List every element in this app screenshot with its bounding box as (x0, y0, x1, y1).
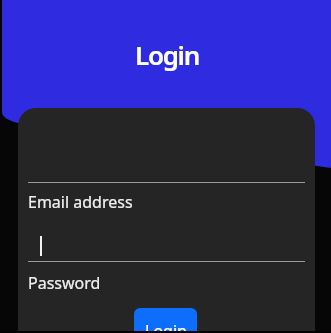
staticText: Email address (28, 191, 133, 213)
staticText: Login (145, 320, 187, 333)
button[interactable] (28, 298, 305, 333)
staticText: Login (135, 37, 199, 72)
button[interactable] (28, 216, 305, 261)
staticText: Password (28, 272, 101, 294)
button[interactable]: Login (134, 308, 197, 333)
